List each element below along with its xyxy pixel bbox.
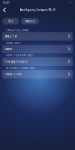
staticText: Skonfiguruj hotspot Wi-Fi	[19, 8, 55, 12]
button[interactable]: Przesyłaj hotspot	[2, 57, 73, 66]
staticText: IDENTYFIKATOR SIECI	[6, 53, 34, 57]
staticText: ···	[69, 1, 72, 5]
staticText: Nazwa	[5, 47, 12, 51]
staticText: Pasmo 5 GHz	[5, 72, 22, 76]
staticText: Przesyłaj hotspot	[5, 60, 28, 63]
staticText: 9:41	[3, 1, 10, 5]
staticText: HASŁO SIECI	[6, 41, 21, 44]
button[interactable]: Pasmo 5 GHz	[2, 70, 73, 78]
button[interactable]: Sieć	[2, 18, 19, 24]
staticText: Sieć	[8, 19, 13, 23]
button[interactable]: WPA2 PSK	[2, 32, 73, 41]
staticText: Nastroje	[24, 19, 35, 23]
staticText: ZABEZPIECZENIA	[6, 28, 29, 32]
button[interactable]: Back	[0, 6, 9, 14]
staticText: WPA2 PSK	[5, 35, 18, 38]
button[interactable]: Nazwa	[2, 45, 73, 53]
button[interactable]: Nastroje	[21, 18, 39, 24]
staticText: WYBIERZ PASMO SIECI	[6, 66, 36, 70]
